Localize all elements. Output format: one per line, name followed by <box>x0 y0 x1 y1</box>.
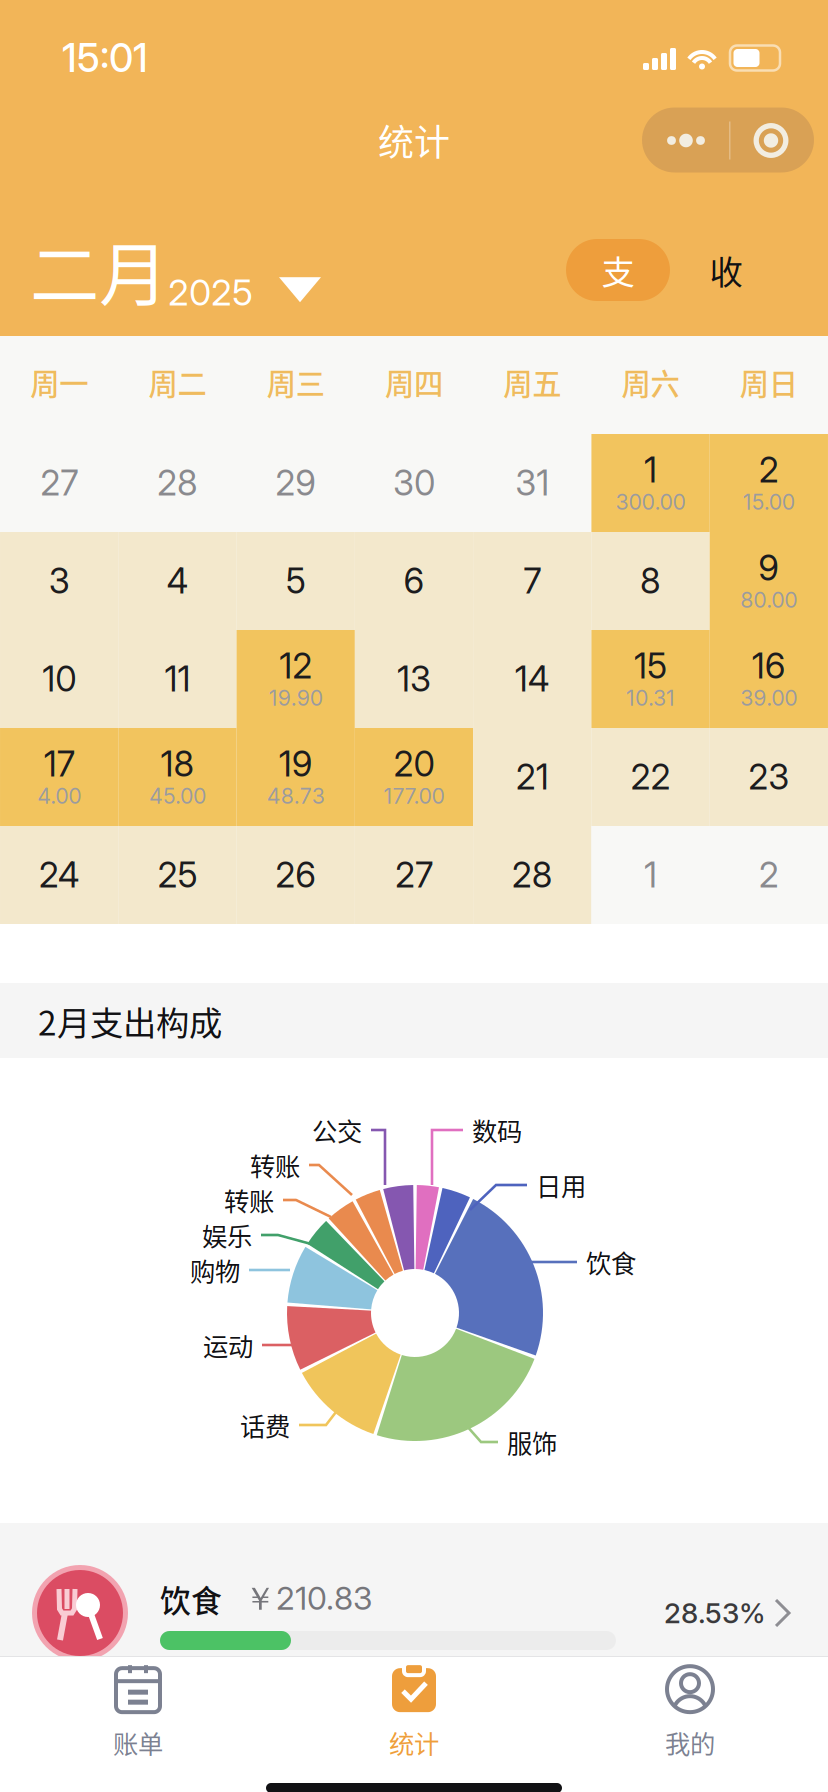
staticText: 购物 <box>190 1252 240 1288</box>
staticText: 39.00 <box>740 685 797 711</box>
button[interactable]: 27 <box>355 826 473 924</box>
staticText: 15 <box>634 645 667 687</box>
staticText: 4 <box>166 560 188 602</box>
staticText: 29 <box>275 462 316 504</box>
staticText: 13 <box>397 658 431 700</box>
staticText: 45.00 <box>149 783 206 809</box>
button[interactable]: 6 <box>355 532 473 630</box>
staticText: 运动 <box>203 1327 253 1363</box>
button[interactable]: 13 <box>355 630 473 728</box>
button[interactable]: 25 <box>118 826 237 924</box>
staticText: 公交 <box>312 1112 362 1148</box>
button[interactable]: 27 <box>0 434 118 532</box>
staticText: 28 <box>157 462 198 504</box>
button[interactable]: 19 <box>237 728 355 826</box>
button[interactable]: 28 <box>473 826 591 924</box>
staticText: 27 <box>395 854 433 896</box>
staticText: ￥210.83 <box>244 1579 372 1619</box>
button[interactable]: 8 <box>591 532 710 630</box>
button[interactable]: Close <box>729 107 814 172</box>
staticText: 周日 <box>740 361 798 403</box>
button[interactable]: 1 <box>591 434 710 532</box>
staticText: 周二 <box>148 361 206 403</box>
staticText: 8 <box>640 560 661 602</box>
staticText: 15.00 <box>743 489 795 515</box>
staticText: 2月支出构成 <box>38 997 222 1045</box>
staticText: 18 <box>160 743 194 785</box>
staticText: 2 <box>759 449 779 491</box>
button[interactable]: 10 <box>0 630 118 728</box>
button[interactable]: 2 <box>710 826 828 924</box>
staticText: 1 <box>644 449 657 491</box>
staticText: 周五 <box>503 361 561 403</box>
button[interactable]: 18 <box>118 728 237 826</box>
button[interactable]: 28 <box>118 434 237 532</box>
staticText: 10 <box>42 658 76 700</box>
staticText: 3 <box>49 560 70 602</box>
staticText: 数码 <box>472 1112 522 1148</box>
button[interactable]: 17 <box>0 728 118 826</box>
staticText: 我的 <box>665 1724 715 1761</box>
button[interactable]: 11 <box>118 630 237 728</box>
staticText: 饮食 <box>160 1577 222 1621</box>
staticText: 15:01 <box>62 35 148 81</box>
staticText: 19.90 <box>269 685 323 711</box>
staticText: 300.00 <box>616 489 686 515</box>
staticText: 2 <box>759 854 779 896</box>
staticText: 周六 <box>622 361 680 403</box>
staticText: 80.00 <box>740 587 797 613</box>
button[interactable]: 2 <box>710 434 828 532</box>
button[interactable]: 收 <box>670 239 782 301</box>
staticText: 娱乐 <box>202 1217 252 1253</box>
button[interactable]: 统计 <box>276 1657 552 1765</box>
button[interactable]: 5 <box>237 532 355 630</box>
staticText: 20 <box>393 743 434 785</box>
button[interactable]: 9 <box>710 532 828 630</box>
staticText: 30 <box>393 462 435 504</box>
button[interactable]: 21 <box>473 728 591 826</box>
button[interactable]: 4 <box>118 532 237 630</box>
staticText: 11 <box>164 658 190 700</box>
button[interactable]: 支 <box>566 239 670 301</box>
button[interactable]: 20 <box>355 728 473 826</box>
button[interactable]: 22 <box>591 728 710 826</box>
staticText: 9 <box>758 547 779 589</box>
button[interactable]: 3 <box>0 532 118 630</box>
button[interactable]: 30 <box>355 434 473 532</box>
staticText: 支 <box>601 246 634 294</box>
button[interactable]: 二月 <box>0 231 337 309</box>
staticText: 统计 <box>378 114 450 166</box>
button[interactable]: 1 <box>591 826 710 924</box>
button[interactable]: 14 <box>473 630 591 728</box>
button[interactable]: More <box>642 107 729 172</box>
button[interactable]: 12 <box>237 630 355 728</box>
button[interactable]: 我的 <box>552 1657 828 1765</box>
staticText: 服饰 <box>507 1424 557 1460</box>
staticText: 48.73 <box>267 783 325 809</box>
staticText: 16 <box>752 645 786 687</box>
button[interactable]: 26 <box>237 826 355 924</box>
staticText: 10.31 <box>626 685 675 711</box>
staticText: 7 <box>523 560 541 602</box>
staticText: 2025 <box>168 271 253 314</box>
button[interactable]: 7 <box>473 532 591 630</box>
staticText: 27 <box>40 462 78 504</box>
staticText: 24 <box>39 854 80 896</box>
button[interactable]: 饮食 <box>0 1523 828 1656</box>
staticText: 日用 <box>536 1167 586 1203</box>
staticText: 19 <box>279 743 313 785</box>
button[interactable]: 24 <box>0 826 118 924</box>
staticText: 转账 <box>224 1182 274 1218</box>
staticText: 28 <box>512 854 553 896</box>
button[interactable]: 账单 <box>0 1657 276 1765</box>
button[interactable]: 29 <box>237 434 355 532</box>
button[interactable]: 15 <box>591 630 710 728</box>
staticText: 17 <box>44 743 75 785</box>
staticText: 25 <box>157 854 197 896</box>
button[interactable]: 16 <box>710 630 828 728</box>
staticText: 账单 <box>113 1724 163 1761</box>
button[interactable]: 31 <box>473 434 591 532</box>
button[interactable]: 23 <box>710 728 828 826</box>
staticText: 177.00 <box>383 783 444 809</box>
staticText: 6 <box>403 560 424 602</box>
